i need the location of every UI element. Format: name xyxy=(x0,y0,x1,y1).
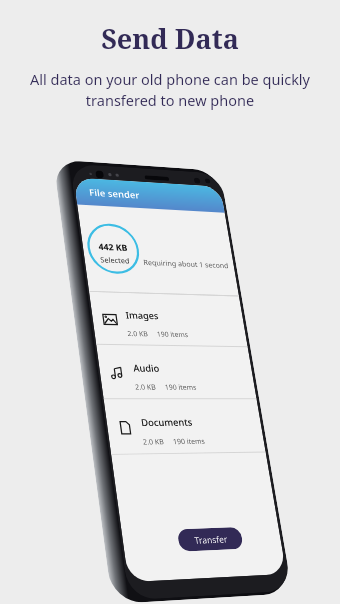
staticText: Transfer xyxy=(193,532,228,546)
staticText: Audio xyxy=(132,361,160,375)
button[interactable]: Documents xyxy=(103,398,266,454)
staticText: 2.0 KB xyxy=(142,436,165,446)
staticText: All data on your old phone can be quickl… xyxy=(30,69,310,111)
staticText: Requiring about 1 second xyxy=(143,257,229,270)
staticText: 190 items xyxy=(164,382,197,392)
button[interactable]: Audio xyxy=(96,344,256,398)
button[interactable]: Images xyxy=(89,291,248,346)
staticText: 442 KB xyxy=(98,241,129,254)
staticText: Documents xyxy=(140,415,193,429)
staticText: Send Data xyxy=(101,20,239,57)
staticText: Images xyxy=(125,308,160,322)
staticText: 2.0 KB xyxy=(134,382,157,392)
staticText: 190 items xyxy=(172,436,206,446)
staticText: File sender xyxy=(88,186,140,201)
staticText: Selected xyxy=(100,254,130,265)
staticText: 2.0 KB xyxy=(127,329,149,338)
staticText: 190 items xyxy=(156,329,189,339)
button[interactable]: Transfer xyxy=(177,527,244,552)
